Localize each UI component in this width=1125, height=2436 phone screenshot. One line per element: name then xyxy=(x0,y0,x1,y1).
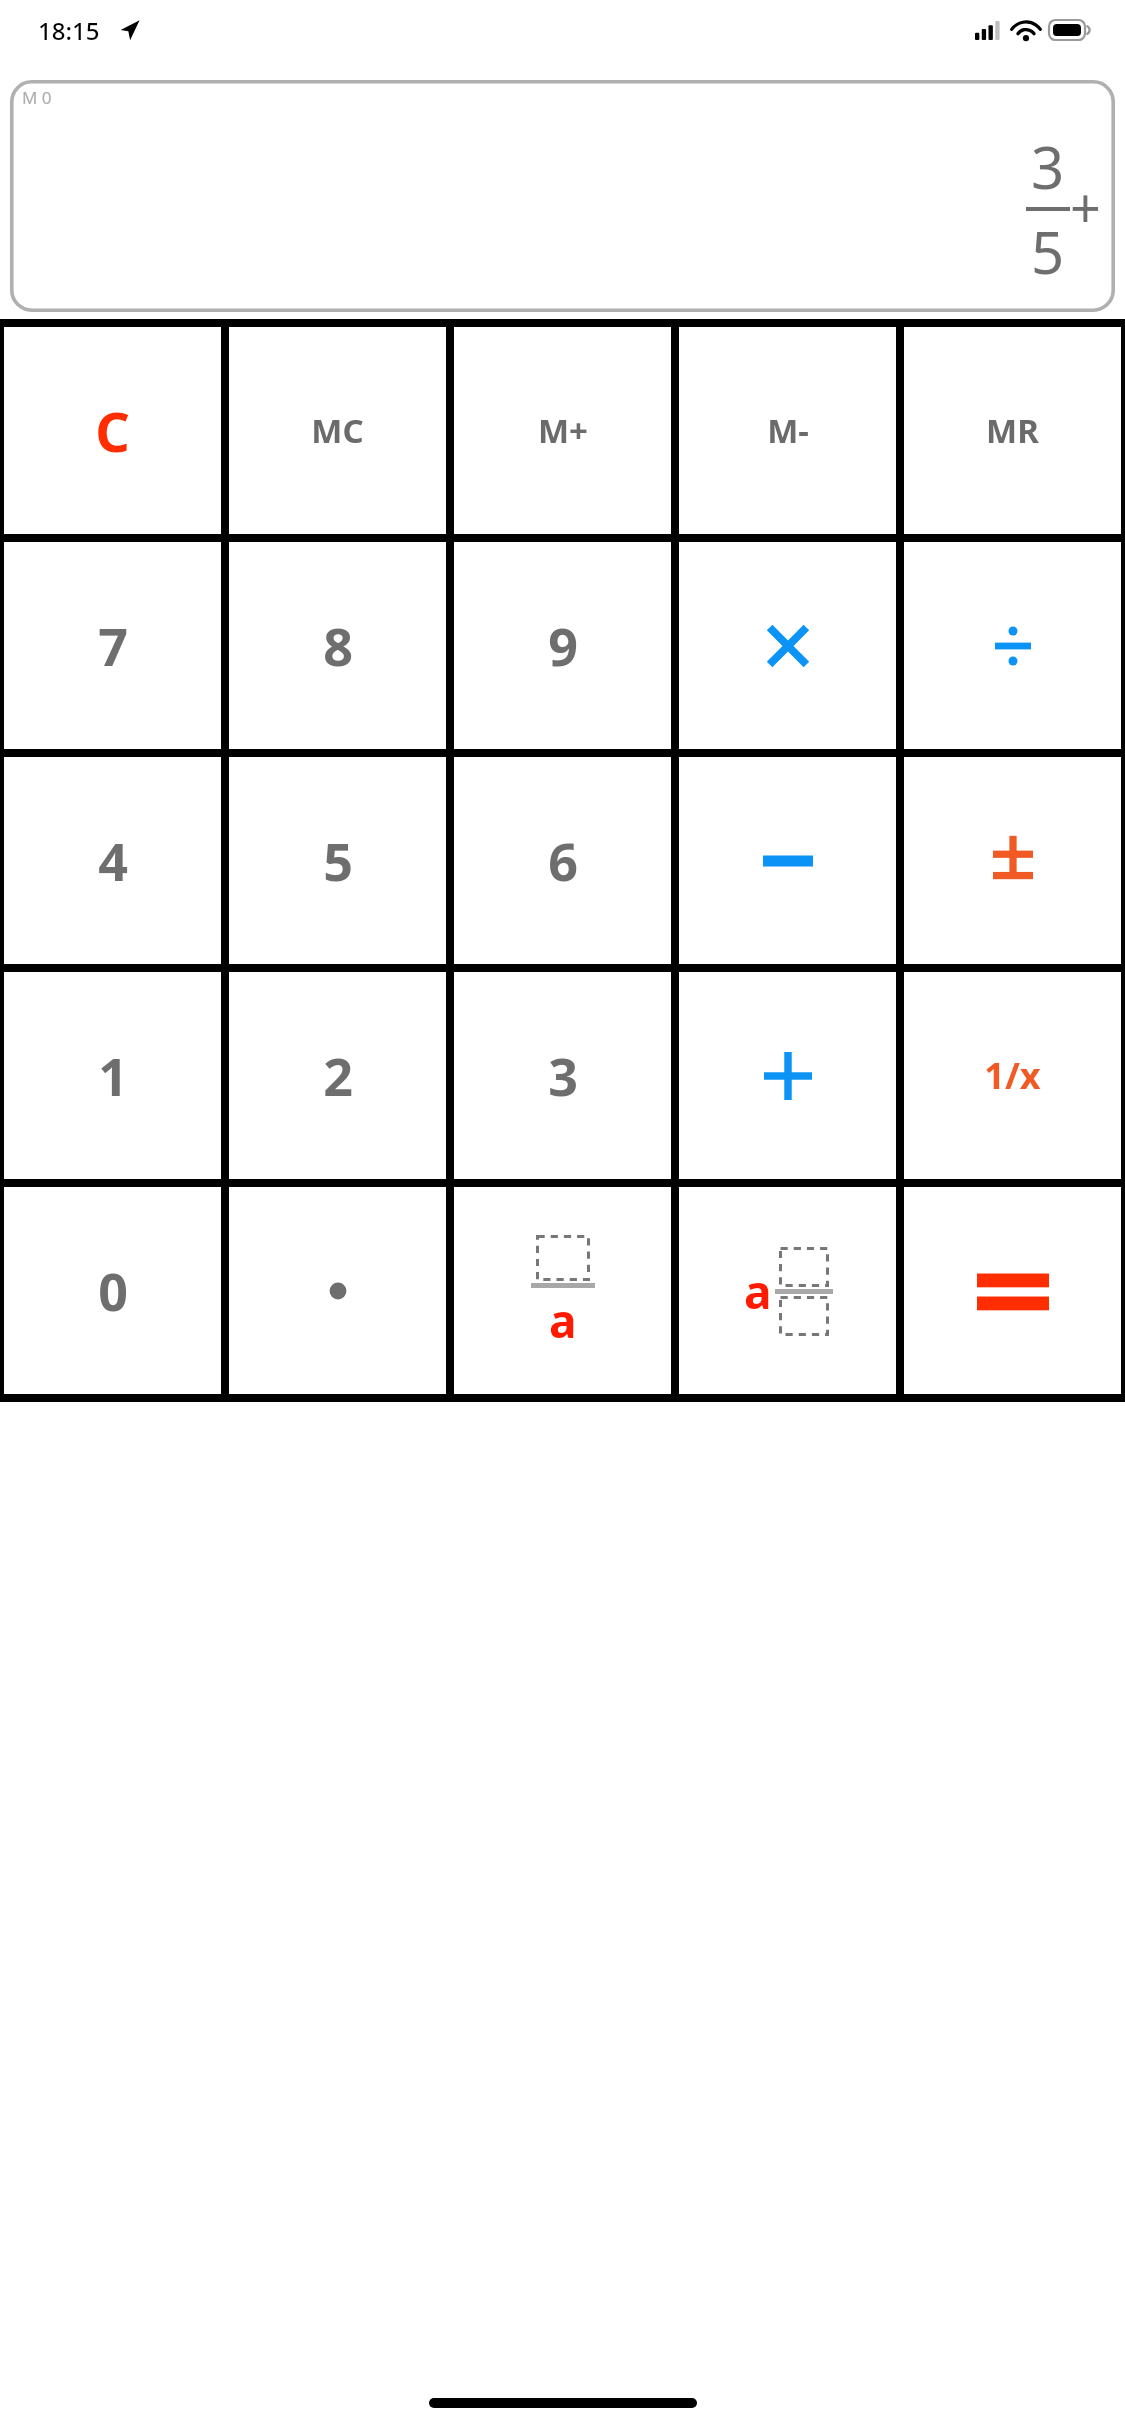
staticText: 1 xyxy=(98,1040,128,1111)
staticText: 9 xyxy=(548,610,578,681)
button[interactable]: 4 xyxy=(4,757,221,964)
button[interactable]: Equals xyxy=(904,1187,1121,1394)
staticText: 1/x xyxy=(984,1051,1041,1100)
button[interactable]: 5 xyxy=(229,757,446,964)
button[interactable]: 9 xyxy=(454,542,671,749)
staticText: 3 xyxy=(548,1040,578,1111)
staticText: M+ xyxy=(538,408,588,453)
button[interactable]: M 0 xyxy=(10,80,1115,312)
staticText: 7 xyxy=(98,610,128,681)
button[interactable]: C xyxy=(4,327,221,534)
button[interactable]: Fraction xyxy=(454,1187,671,1394)
button[interactable]: 6 xyxy=(454,757,671,964)
button[interactable]: Minus xyxy=(679,757,896,964)
button[interactable]: 8 xyxy=(229,542,446,749)
button[interactable]: Plus minus xyxy=(904,757,1121,964)
button[interactable]: MC xyxy=(229,327,446,534)
button[interactable]: 7 xyxy=(4,542,221,749)
staticText: M- xyxy=(767,408,809,453)
staticText: 18:15 xyxy=(38,14,100,47)
staticText: C xyxy=(95,394,130,468)
staticText: 2 xyxy=(323,1040,353,1111)
staticText: + xyxy=(1070,170,1101,244)
staticText: 8 xyxy=(323,610,353,681)
button[interactable]: Reciprocal xyxy=(904,972,1121,1179)
staticText: 3 xyxy=(1031,127,1065,206)
staticText: 0 xyxy=(98,1255,128,1326)
staticText: MR xyxy=(986,408,1039,453)
button[interactable]: 3 xyxy=(454,972,671,1179)
staticText: MC xyxy=(311,408,364,453)
staticText: 5 xyxy=(323,825,353,896)
staticText: 4 xyxy=(98,825,128,896)
button[interactable]: M+ xyxy=(454,327,671,534)
button[interactable]: Divide xyxy=(904,542,1121,749)
button[interactable]: Multiply xyxy=(679,542,896,749)
staticText: a xyxy=(744,1260,772,1323)
staticText: 5 xyxy=(1031,212,1065,291)
button[interactable]: 0 xyxy=(4,1187,221,1394)
button[interactable]: Mixed number xyxy=(679,1187,896,1394)
button[interactable]: 1 xyxy=(4,972,221,1179)
button[interactable]: M- xyxy=(679,327,896,534)
staticText: M 0 xyxy=(22,86,52,109)
staticText: a xyxy=(549,1289,577,1347)
button[interactable]: MR xyxy=(904,327,1121,534)
button[interactable]: 2 xyxy=(229,972,446,1179)
staticText: 6 xyxy=(548,825,578,896)
button[interactable]: Plus xyxy=(679,972,896,1179)
button[interactable]: Decimal point xyxy=(229,1187,446,1394)
